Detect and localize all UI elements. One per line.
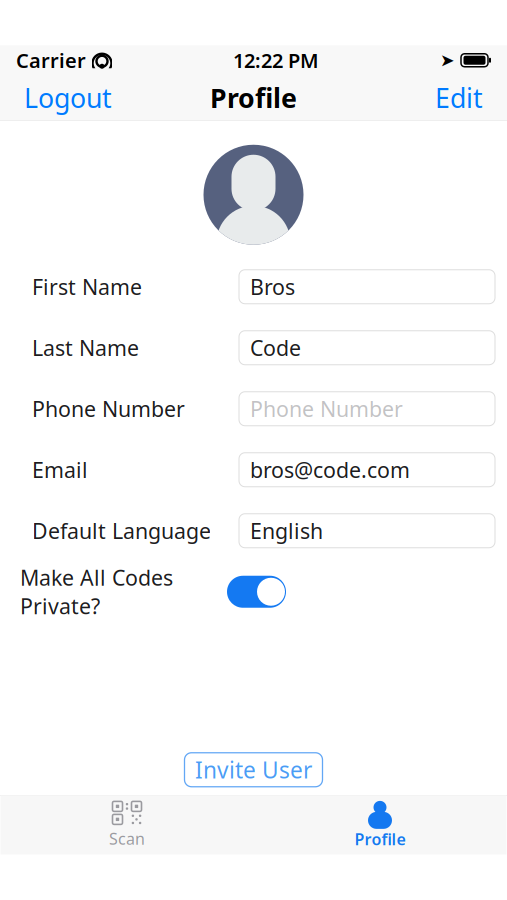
- staticText: Email: [32, 456, 88, 484]
- staticText: Bros: [250, 273, 295, 301]
- staticText: Logout: [24, 80, 112, 115]
- button[interactable]: Profile: [253, 799, 506, 851]
- staticText: ➤: [440, 50, 455, 70]
- staticText: Make All Codes Private?: [20, 563, 173, 620]
- staticText: Carrier: [16, 47, 86, 74]
- button[interactable]: Edit: [427, 74, 491, 121]
- button[interactable]: Code: [239, 331, 495, 365]
- staticText: First Name: [32, 273, 142, 301]
- staticText: Profile: [210, 80, 297, 115]
- button[interactable]: English: [239, 514, 495, 548]
- staticText: Scan: [109, 828, 145, 849]
- staticText: Default Language: [32, 517, 211, 545]
- button[interactable]: Scan: [0, 799, 253, 851]
- button[interactable]: bros@code.com: [239, 453, 495, 487]
- staticText: English: [250, 517, 323, 545]
- button[interactable]: Make All Codes Private: [227, 576, 286, 608]
- button[interactable]: Bros: [239, 270, 495, 304]
- button[interactable]: Invite User: [184, 753, 322, 787]
- staticText: Phone Number: [250, 395, 403, 423]
- staticText: Invite User: [195, 755, 312, 785]
- staticText: Last Name: [32, 334, 139, 362]
- button[interactable]: Logout: [16, 74, 120, 121]
- staticText: Code: [250, 334, 301, 362]
- staticText: bros@code.com: [250, 456, 410, 484]
- staticText: Edit: [435, 80, 483, 115]
- staticText: Phone Number: [32, 395, 185, 423]
- staticText: 12:22 PM: [233, 47, 319, 74]
- staticText: Profile: [354, 828, 405, 850]
- button[interactable]: Phone Number: [239, 392, 495, 426]
